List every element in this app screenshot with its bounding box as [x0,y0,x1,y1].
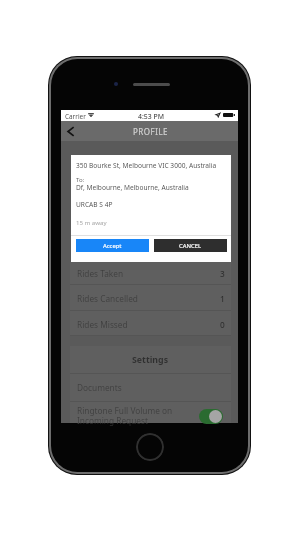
button[interactable]: Back [62,122,78,140]
staticText: CANCEL [179,242,202,250]
staticText: 3 [220,268,225,279]
staticText: PROFILE [133,126,169,137]
button[interactable]: Ringtone full volume toggle [199,409,223,424]
staticText: Incoming Request [77,415,148,426]
staticText: 15 m away [76,218,107,226]
button[interactable]: CANCEL [154,239,227,252]
button[interactable]: Rides Cancelled [70,285,231,311]
button[interactable]: Home [136,433,164,461]
staticText: 1 [220,293,225,304]
staticText: Accept [103,242,122,250]
button[interactable]: Rides Taken [70,262,231,285]
staticText: Rides Missed [77,319,128,330]
staticText: Carrier [65,112,86,121]
button[interactable]: Rides Missed [70,311,231,337]
staticText: 350 Bourke St, Melbourne VIC 3000, Austr… [76,161,217,170]
button[interactable]: Settings [70,346,231,374]
staticText: Df, Melbourne, Melbourne, Australia [76,183,189,192]
staticText: Rides Taken [77,268,124,279]
staticText: URCAB S 4P [76,200,113,209]
staticText: To: [76,175,85,183]
staticText: Ringtone Full Volume on [77,405,173,416]
staticText: Documents [77,382,122,393]
button[interactable]: Accept [76,239,149,252]
button[interactable]: Ringtone Full Volume on [70,401,231,423]
staticText: Settings [132,354,169,366]
staticText: 0 [220,319,225,330]
staticText: 4:53 PM [138,112,165,121]
staticText: Rides Cancelled [77,293,138,304]
